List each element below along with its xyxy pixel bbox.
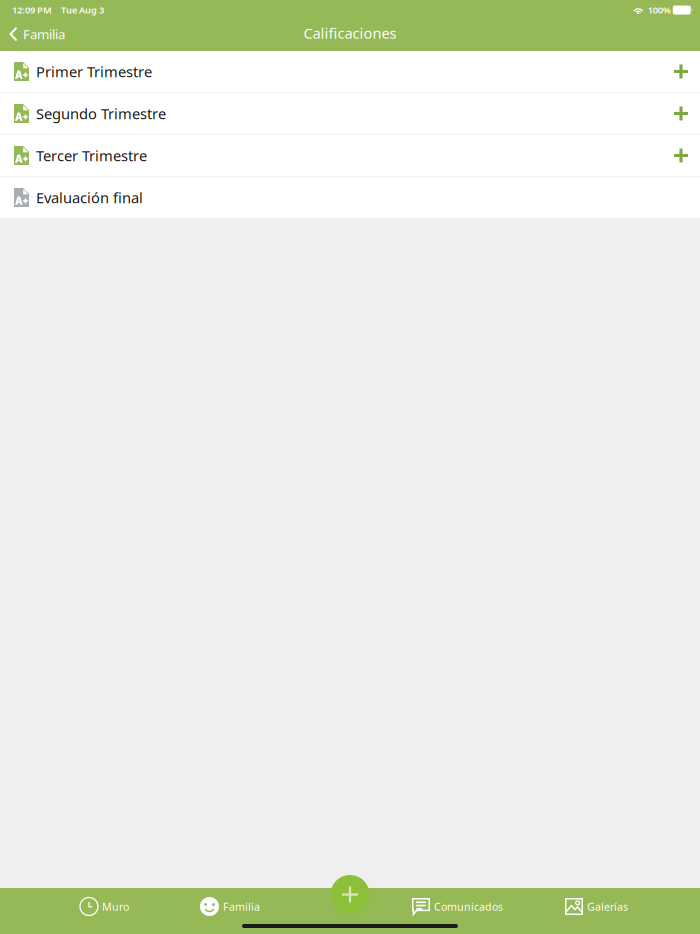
staticText: Tercer Trimestre [36, 146, 147, 165]
button[interactable]: Comunicados [412, 888, 503, 934]
button[interactable]: Evaluación final [0, 177, 700, 218]
button[interactable]: Segundo Trimestre [0, 93, 700, 134]
staticText: Segundo Trimestre [36, 104, 166, 123]
staticText: 12:09 PM [12, 4, 52, 16]
staticText: Comunicados [434, 899, 503, 914]
button[interactable]: Muro [80, 888, 129, 934]
staticText: Tue Aug 3 [61, 4, 104, 16]
staticText: Familia [223, 899, 260, 914]
button[interactable]: Galerías [565, 888, 628, 934]
button[interactable]: Add [330, 875, 369, 914]
staticText: Galerías [587, 899, 628, 914]
staticText: 100% [648, 4, 671, 16]
staticText: Primer Trimestre [36, 62, 152, 81]
staticText: Muro [102, 899, 129, 914]
button[interactable]: Familia [0, 20, 65, 51]
button[interactable]: Familia [200, 888, 260, 934]
staticText: Familia [23, 25, 65, 43]
staticText: Evaluación final [36, 188, 143, 207]
button[interactable]: Primer Trimestre [0, 51, 700, 92]
staticText: Calificaciones [303, 23, 396, 43]
button[interactable]: Tercer Trimestre [0, 135, 700, 176]
